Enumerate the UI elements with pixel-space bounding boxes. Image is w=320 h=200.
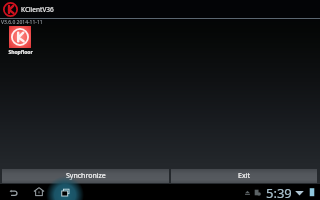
staticText: 5:39 bbox=[266, 184, 292, 200]
staticText: V3.6.0 2014-11-11 bbox=[1, 19, 43, 26]
staticText: KClientV36 bbox=[21, 5, 54, 14]
staticText: Shopfloor bbox=[8, 49, 33, 56]
button[interactable]: Recent apps bbox=[52, 184, 78, 200]
button[interactable]: Home bbox=[26, 184, 52, 200]
button[interactable]: Back bbox=[0, 184, 26, 200]
button[interactable]: Exit bbox=[171, 169, 317, 183]
button[interactable]: Synchronize bbox=[2, 169, 169, 183]
button[interactable]: Shopfloor bbox=[4, 26, 36, 56]
staticText: Exit bbox=[238, 171, 250, 181]
staticText: Synchronize bbox=[66, 171, 106, 181]
